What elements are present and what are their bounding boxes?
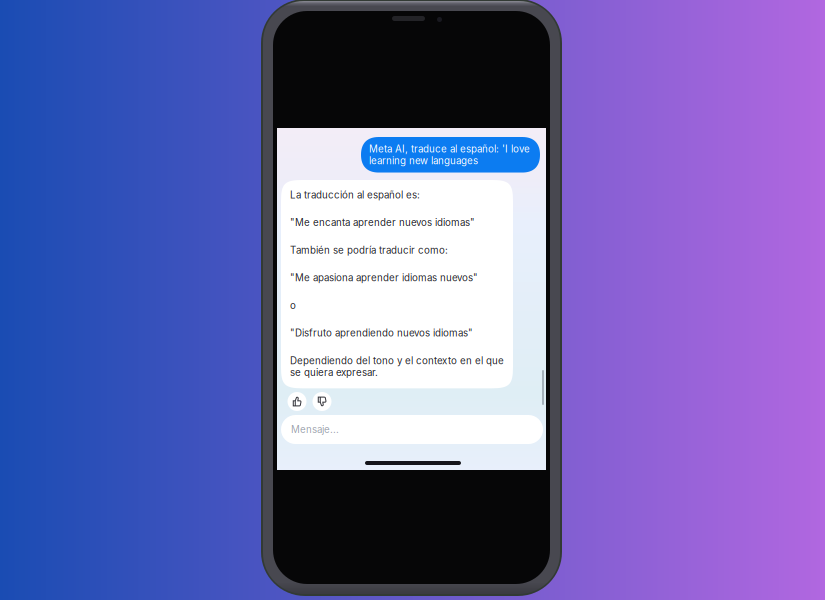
staticText: "Me encanta aprender nuevos idiomas" xyxy=(290,217,475,228)
button[interactable]: Mensaje... xyxy=(281,415,543,444)
button[interactable]: Meta AI, traduce al español: 'I love lea… xyxy=(361,137,540,173)
button[interactable]: Dislike xyxy=(312,392,331,411)
staticText: o xyxy=(290,299,296,311)
staticText: La traducción al español es: xyxy=(290,189,420,201)
staticText: Meta AI, traduce al español: 'I love lea… xyxy=(369,143,530,167)
staticText: "Disfruto aprendiendo nuevos idiomas" xyxy=(290,327,473,339)
staticText: "Me apasiona aprender idiomas nuevos" xyxy=(290,272,478,284)
staticText: Mensaje... xyxy=(291,424,339,435)
button[interactable]: Like xyxy=(287,392,306,411)
staticText: Dependiendo del tono y el contexto en el… xyxy=(290,355,504,378)
staticText: También se podría traducir como: xyxy=(290,244,448,256)
